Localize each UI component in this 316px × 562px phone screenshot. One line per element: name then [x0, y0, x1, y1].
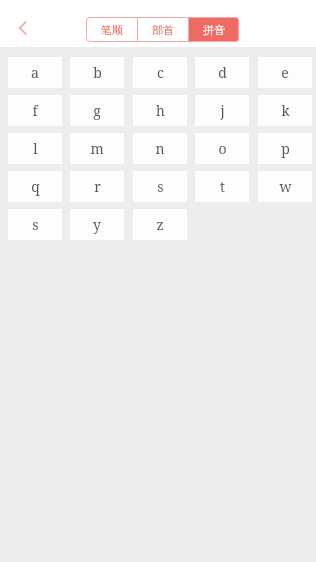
staticText: m	[90, 139, 104, 158]
staticText: r	[94, 177, 101, 196]
button[interactable]: l	[8, 133, 62, 164]
staticText: s	[157, 177, 164, 196]
staticText: z	[156, 215, 164, 234]
button[interactable]: f	[8, 95, 62, 126]
staticText: d	[218, 63, 227, 82]
button[interactable]: y	[70, 209, 124, 240]
staticText: y	[93, 215, 101, 234]
staticText: 拼音	[203, 23, 225, 37]
button[interactable]: p	[258, 133, 312, 164]
staticText: n	[155, 139, 165, 158]
button[interactable]: b	[70, 57, 124, 88]
button[interactable]: h	[133, 95, 187, 126]
button[interactable]: e	[258, 57, 312, 88]
staticText: s	[32, 215, 39, 234]
button[interactable]: q	[8, 171, 62, 202]
button[interactable]: m	[70, 133, 124, 164]
button[interactable]: g	[70, 95, 124, 126]
button[interactable]: r	[70, 171, 124, 202]
staticText: f	[32, 101, 38, 120]
button[interactable]: k	[258, 95, 312, 126]
staticText: k	[281, 101, 290, 120]
button[interactable]: c	[133, 57, 187, 88]
button[interactable]: a	[8, 57, 62, 88]
button[interactable]: t	[195, 171, 249, 202]
staticText: p	[281, 139, 290, 158]
button[interactable]: s	[8, 209, 62, 240]
button[interactable]: s	[133, 171, 187, 202]
staticText: 笔顺	[101, 23, 123, 37]
button[interactable]: 笔顺	[86, 17, 137, 42]
button[interactable]: w	[258, 171, 312, 202]
staticText: q	[31, 177, 40, 196]
button[interactable]: o	[195, 133, 249, 164]
button[interactable]: n	[133, 133, 187, 164]
button[interactable]: Back	[7, 12, 39, 44]
staticText: c	[157, 63, 164, 82]
button[interactable]: j	[195, 95, 249, 126]
staticText: a	[31, 63, 39, 82]
staticText: j	[220, 101, 225, 120]
staticText: t	[220, 177, 225, 196]
button[interactable]: z	[133, 209, 187, 240]
staticText: h	[156, 101, 165, 120]
staticText: 部首	[152, 23, 174, 37]
staticText: o	[218, 139, 227, 158]
button[interactable]: d	[195, 57, 249, 88]
staticText: l	[33, 139, 38, 158]
staticText: e	[281, 63, 289, 82]
button[interactable]: 部首	[138, 17, 188, 42]
staticText: g	[93, 101, 101, 120]
staticText: b	[93, 63, 102, 82]
staticText: w	[279, 177, 292, 196]
button[interactable]: 拼音	[189, 17, 239, 42]
